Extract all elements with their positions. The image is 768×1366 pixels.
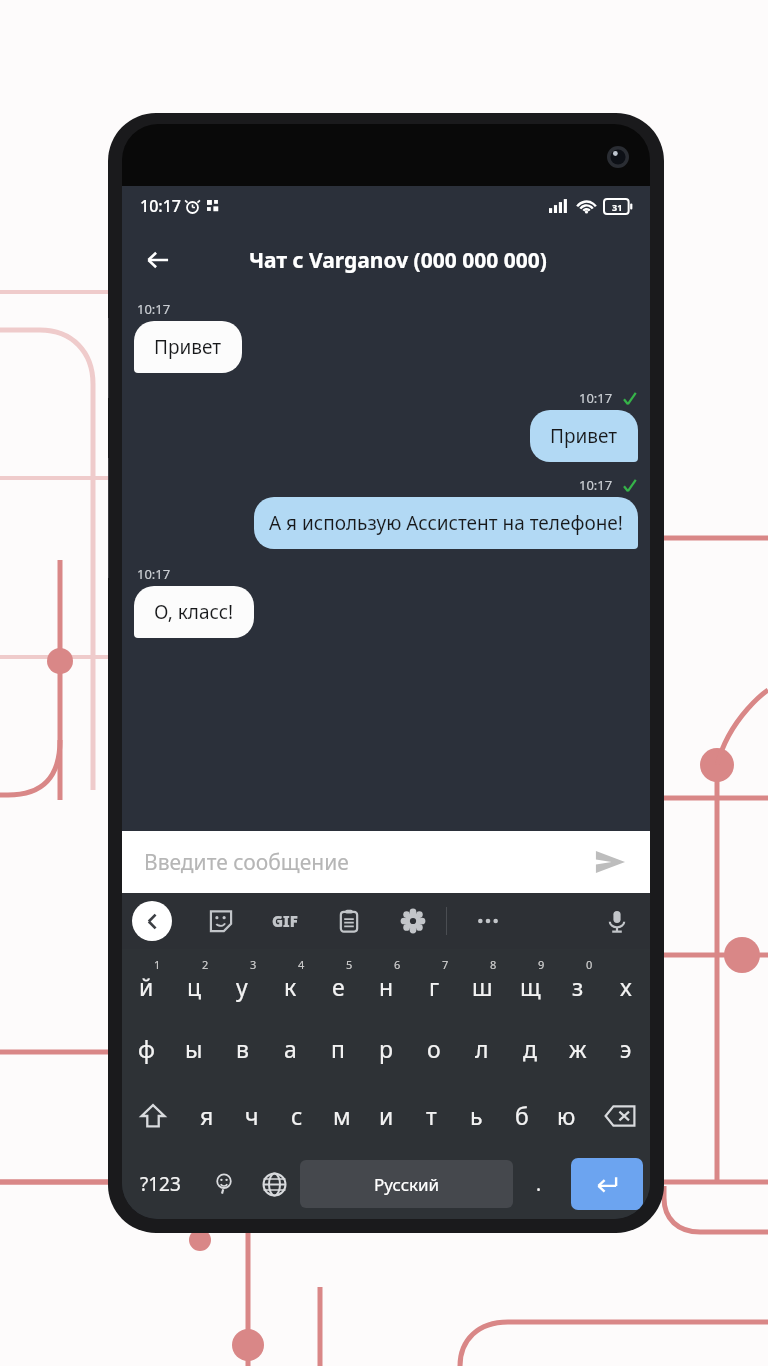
staticText: ю (557, 1100, 576, 1131)
staticText: ц (187, 971, 202, 1002)
button[interactable]: Привет (134, 321, 242, 373)
staticText: Введите сообщение (144, 848, 349, 877)
staticText: х (620, 971, 632, 1002)
button[interactable]: ц (170, 949, 218, 1015)
staticText: ч (245, 1100, 259, 1131)
staticText: ж (569, 1033, 587, 1064)
button[interactable]: г (410, 949, 458, 1015)
button[interactable]: ы (170, 1015, 218, 1082)
button[interactable]: ч (229, 1082, 274, 1149)
staticText: Привет (154, 334, 222, 360)
staticText: л (475, 1033, 489, 1064)
button[interactable]: с (274, 1082, 319, 1149)
staticText: 6 (394, 957, 401, 972)
staticText: г (429, 971, 440, 1002)
staticText: м (333, 1100, 351, 1131)
button[interactable]: п (314, 1015, 362, 1082)
button[interactable]: Привет (530, 410, 638, 462)
staticText: 10:17 (137, 300, 171, 318)
button[interactable]: Emoji (198, 1149, 249, 1219)
button[interactable]: GIF (266, 902, 304, 940)
staticText: ы (185, 1033, 203, 1064)
staticText: а (284, 1033, 297, 1064)
staticText: д (523, 1033, 537, 1064)
staticText: щ (520, 971, 541, 1002)
button[interactable]: ь (454, 1082, 499, 1149)
button[interactable]: б (499, 1082, 544, 1149)
staticText: ь (470, 1100, 483, 1131)
staticText: 10:17 (140, 195, 181, 217)
button[interactable]: а (266, 1015, 314, 1082)
staticText: 10:17 (579, 476, 613, 494)
button[interactable]: ф (122, 1015, 170, 1082)
button[interactable]: ю (544, 1082, 589, 1149)
button[interactable]: л (458, 1015, 506, 1082)
button[interactable]: Enter (571, 1158, 643, 1210)
staticText: 5 (346, 957, 353, 972)
staticText: 3 (250, 957, 257, 972)
button[interactable]: э (602, 1015, 650, 1082)
button[interactable]: Введите сообщение (122, 831, 650, 893)
button[interactable]: А я использую Ассистент на телефоне! (254, 497, 638, 549)
button[interactable]: у (218, 949, 266, 1015)
button[interactable]: Send (590, 842, 630, 882)
button[interactable]: й (122, 949, 170, 1015)
staticText: А я использую Ассистент на телефоне! (269, 510, 623, 536)
button[interactable]: Settings (394, 902, 432, 940)
staticText: у (236, 971, 248, 1002)
button[interactable]: ш (458, 949, 506, 1015)
button[interactable]: Back to keyboard (132, 901, 172, 941)
staticText: т (426, 1100, 437, 1131)
button[interactable]: я (184, 1082, 229, 1149)
button[interactable]: Back (136, 238, 180, 282)
staticText: ф (138, 1033, 155, 1064)
button[interactable]: н (362, 949, 410, 1015)
button[interactable]: в (218, 1015, 266, 1082)
staticText: п (331, 1033, 345, 1064)
staticText: О, класс! (154, 599, 234, 625)
button[interactable]: и (364, 1082, 409, 1149)
staticText: б (515, 1100, 529, 1131)
button[interactable]: . (513, 1149, 564, 1219)
button[interactable]: Shift (122, 1082, 184, 1149)
button[interactable]: Clipboard (330, 902, 368, 940)
staticText: в (236, 1033, 249, 1064)
staticText: к (284, 971, 297, 1002)
staticText: 10:17 (137, 565, 171, 583)
staticText: 8 (490, 957, 497, 972)
button[interactable]: Change language (249, 1149, 300, 1219)
button[interactable]: з (554, 949, 602, 1015)
button[interactable]: х (602, 949, 650, 1015)
button[interactable]: ?123 (122, 1149, 198, 1219)
button[interactable]: т (409, 1082, 454, 1149)
staticText: 31 (612, 201, 623, 213)
staticText: з (572, 971, 584, 1002)
button[interactable]: Stickers (202, 902, 240, 940)
button[interactable]: е (314, 949, 362, 1015)
button[interactable]: Русский (300, 1160, 513, 1208)
staticText: 2 (202, 957, 209, 972)
button[interactable]: м (319, 1082, 364, 1149)
button[interactable]: ж (554, 1015, 602, 1082)
staticText: 10:17 (579, 389, 613, 407)
staticText: ш (472, 971, 493, 1002)
staticText: о (427, 1033, 441, 1064)
button[interactable]: д (506, 1015, 554, 1082)
button[interactable]: More options (469, 902, 507, 940)
staticText: 7 (442, 957, 449, 972)
staticText: и (379, 1100, 394, 1131)
staticText: GIF (272, 911, 298, 931)
button[interactable]: о (410, 1015, 458, 1082)
button[interactable]: Backspace (589, 1082, 650, 1149)
staticText: Чат с Varganov (000 000 000) (249, 246, 547, 275)
button[interactable]: Voice input (598, 902, 636, 940)
button[interactable]: р (362, 1015, 410, 1082)
staticText: р (379, 1033, 393, 1064)
staticText: й (139, 971, 154, 1002)
button[interactable]: щ (506, 949, 554, 1015)
staticText: ?123 (140, 1171, 181, 1197)
staticText: 0 (586, 957, 593, 972)
button[interactable]: О, класс! (134, 586, 254, 638)
button[interactable]: к (266, 949, 314, 1015)
staticText: н (379, 971, 394, 1002)
